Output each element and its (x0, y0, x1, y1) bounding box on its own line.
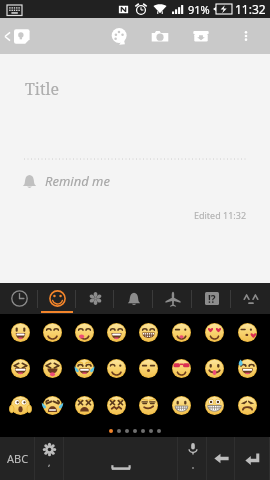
button[interactable]: Smileys (38, 283, 76, 314)
button[interactable]: Emoji 17 (4, 387, 36, 424)
button[interactable]: Emoji 21 (132, 387, 165, 424)
button[interactable]: Emoji 11 (68, 350, 100, 387)
button[interactable]: Add image (143, 18, 177, 54)
button[interactable]: Emoji 12 (100, 350, 132, 387)
staticText: Remind me (45, 172, 110, 190)
staticText: 91% (188, 2, 210, 17)
button[interactable]: Emoji 13 (132, 350, 165, 387)
button[interactable]: Emoticons (231, 283, 270, 314)
button[interactable]: Emoji 4 (100, 314, 132, 350)
button[interactable]: Emoji 20 (100, 387, 132, 424)
button[interactable]: Emoji 14 (165, 350, 198, 387)
button[interactable]: Objects (114, 283, 153, 314)
button[interactable]: Travel (153, 283, 192, 314)
button[interactable]: Emoji 3 (68, 314, 100, 350)
button[interactable]: Symbols (192, 283, 231, 314)
button[interactable]: Emoji 6 (165, 314, 198, 350)
button[interactable]: Emoji 10 (36, 350, 68, 387)
button[interactable]: Emoji 1 (4, 314, 36, 350)
button[interactable]: Recent (0, 283, 38, 314)
staticText: Edited 11:32 (194, 209, 247, 221)
button[interactable]: Emoji 8 (231, 314, 264, 350)
button[interactable]: Voice input (178, 437, 207, 480)
button[interactable]: Emoji 23 (198, 387, 231, 424)
button[interactable]: Remind me (22, 172, 110, 190)
button[interactable]: Backspace (207, 437, 235, 480)
button[interactable]: Archive (184, 18, 218, 54)
button[interactable]: Emoji 9 (4, 350, 36, 387)
button[interactable]: Navigate up (0, 18, 50, 54)
button[interactable]: Emoji 5 (132, 314, 165, 350)
staticText: ABC (7, 451, 29, 466)
button[interactable]: Emoji 7 (198, 314, 231, 350)
button[interactable]: Enter (235, 437, 270, 480)
button[interactable]: Change colour (102, 18, 136, 54)
button[interactable]: ABC (0, 437, 35, 480)
button[interactable]: Emoji 2 (36, 314, 68, 350)
button[interactable]: Emoji 24 (231, 387, 264, 424)
button[interactable]: Emoji 15 (198, 350, 231, 387)
button[interactable]: Emoji 18 (36, 387, 68, 424)
staticText: , (48, 456, 51, 468)
button[interactable]: More options (233, 18, 259, 54)
button[interactable]: Space (64, 437, 178, 480)
staticText: Title (25, 78, 60, 100)
button[interactable]: Emoji 22 (165, 387, 198, 424)
button[interactable]: Emoji 19 (68, 387, 100, 424)
button[interactable]: Settings (35, 437, 64, 480)
staticText: !? (208, 292, 216, 305)
button[interactable]: Nature (76, 283, 114, 314)
staticText: 11:32 (235, 1, 266, 17)
button[interactable]: Emoji 16 (231, 350, 264, 387)
